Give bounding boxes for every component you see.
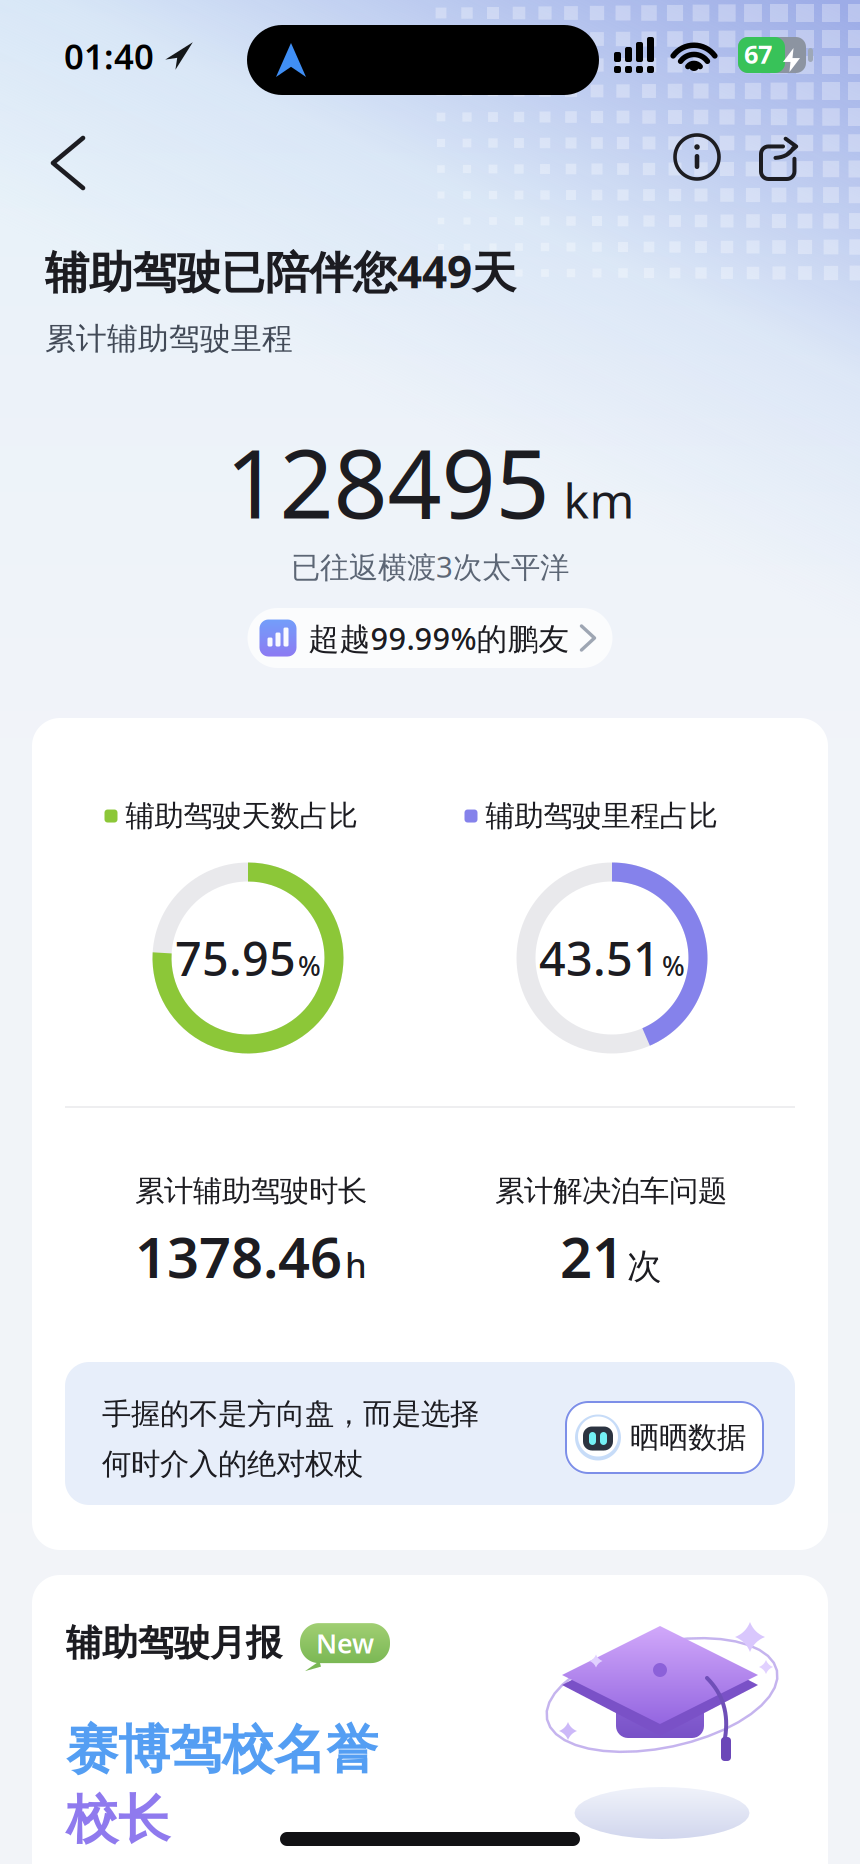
staticText: 1378.46 — [135, 1219, 342, 1293]
staticText: 赛博驾校名誉 — [66, 1718, 378, 1782]
staticText: 辅助驾驶天数占比 — [125, 798, 357, 834]
staticText: % — [298, 948, 321, 983]
staticText: 累计辅助驾驶时长 — [135, 1173, 367, 1209]
staticText: New — [316, 1625, 374, 1661]
staticText: 晒晒数据 — [630, 1419, 746, 1455]
staticText: 校长 — [66, 1788, 170, 1852]
staticText: 已往返横渡3次太平洋 — [291, 547, 569, 586]
staticText: 辅助驾驶月报 — [66, 1621, 282, 1665]
staticText: 01:40 — [64, 33, 154, 79]
staticText: km — [563, 468, 634, 532]
button[interactable]: 晒晒数据 — [565, 1401, 764, 1474]
button[interactable]: Info — [667, 127, 727, 187]
staticText: 67 — [744, 37, 772, 71]
staticText: 43.51 — [539, 927, 660, 989]
button[interactable]: 辅助驾驶月报 — [32, 1575, 828, 1864]
staticText: 累计解决泊车问题 — [495, 1173, 727, 1209]
staticText: 次 — [627, 1245, 662, 1288]
staticText: 21 — [560, 1219, 624, 1293]
staticText: 何时介入的绝对权杖 — [102, 1446, 363, 1482]
staticText: 128495 — [225, 419, 549, 545]
staticText: % — [662, 948, 685, 983]
staticText: h — [345, 1241, 367, 1287]
button[interactable]: Share — [753, 127, 813, 187]
staticText: 辅助驾驶里程占比 — [485, 798, 717, 834]
staticText: 超越99.99%的鹏友 — [308, 618, 569, 658]
staticText: 75.95 — [175, 927, 296, 989]
staticText: 辅助驾驶已陪伴您449天 — [45, 242, 516, 300]
button[interactable]: Back — [41, 126, 95, 200]
staticText: 累计辅助驾驶里程 — [45, 320, 293, 358]
staticText: 手握的不是方向盘，而是选择 — [102, 1396, 479, 1432]
button[interactable]: 超越99.99%的鹏友 — [247, 608, 612, 668]
